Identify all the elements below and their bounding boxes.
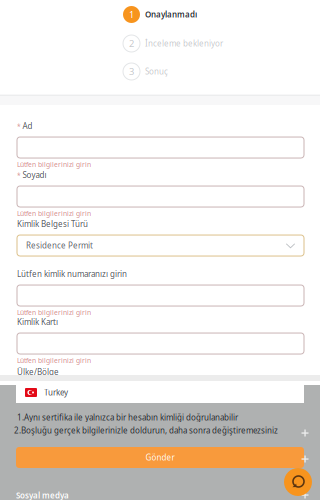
staticText: 1 [129,8,134,21]
staticText: Ülke/Bölge [17,367,59,377]
staticText: * [17,122,21,130]
staticText: * [17,171,21,179]
button[interactable]: 1 [123,6,303,23]
staticText: Soyadı [22,170,46,180]
button[interactable]: 2 [123,35,303,52]
staticText: Lütfen bilgilerinizi girin [17,209,91,218]
staticText: 1.Aynı sertifika ile yalnızca bir hesabı… [17,412,238,423]
staticText: 2.Boşluğu gerçek bilgilerinizle doldurun… [14,425,278,436]
button[interactable]: Residence Permit [17,235,304,256]
staticText: Turkey [44,387,68,398]
staticText: Sonuç [145,66,168,77]
staticText: Lütfen bilgilerinizi girin [17,160,91,169]
button[interactable]: Sohbet [284,468,312,496]
staticText: Lütfen kimlik numaranızı girin [17,269,127,279]
staticText: Residence Permit [26,240,93,251]
button[interactable]: Turkey [16,382,304,403]
staticText: Ad [22,121,32,131]
button[interactable]: Gönder [16,447,304,468]
staticText: 2 [129,37,134,50]
staticText: Gönder [145,452,174,463]
staticText: Lütfen bilgilerinizi girin [17,308,91,317]
staticText: Kimlik Belgesi Türü [17,219,88,229]
staticText: Onaylanmadı [145,9,197,20]
staticText: 3 [129,65,134,78]
staticText: İnceleme bekleniyor [145,38,223,49]
staticText: Sosyal medya [16,490,69,500]
staticText: Lütfen bilgilerinizi girin [17,356,91,365]
staticText: Kimlik Kartı [17,317,58,327]
button[interactable]: 3 [123,63,303,80]
